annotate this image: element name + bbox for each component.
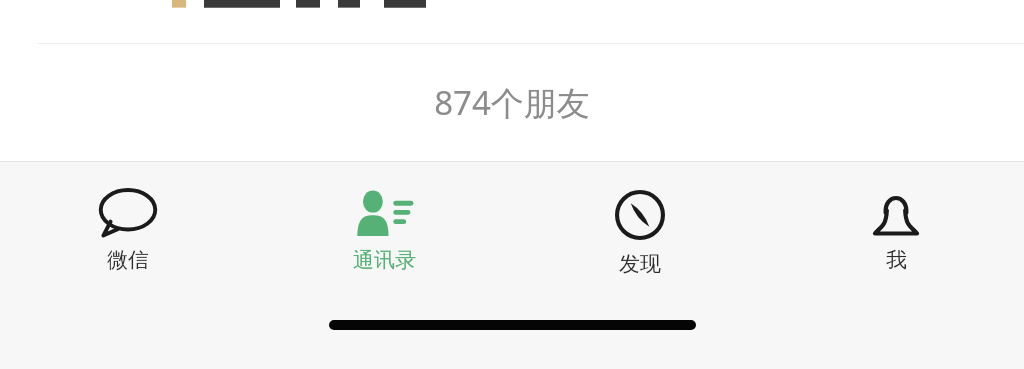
staticText: 874个朋友: [434, 80, 590, 125]
button[interactable]: Discover: [512, 162, 768, 302]
button[interactable]: Me: [768, 162, 1024, 302]
button[interactable]: [0, 0, 1024, 44]
button[interactable]: WeChat: [0, 162, 256, 302]
staticText: 我: [886, 247, 907, 273]
staticText: 通讯录: [353, 247, 416, 273]
staticText: 微信: [107, 247, 149, 273]
button[interactable]: Contacts: [256, 162, 512, 302]
staticText: 发现: [619, 251, 661, 277]
